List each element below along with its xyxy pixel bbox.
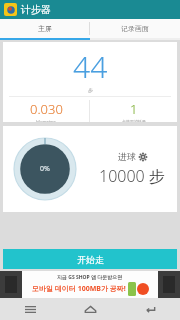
staticText: 计步器 (21, 3, 51, 16)
button[interactable]: 记录画面 (90, 19, 180, 38)
staticText: 步 (88, 87, 93, 93)
button[interactable]: 0.030 (3, 100, 89, 122)
staticText: 지금 GS SHOP 앱 다운받으면 (57, 274, 123, 281)
staticText: 0% (40, 164, 50, 174)
staticText: 记录画面 (121, 24, 149, 33)
button[interactable]: 지금 GS SHOP 앱 다운받으면 (0, 271, 180, 298)
staticText: 卡路里消耗量 (122, 119, 146, 122)
staticText: 1 (130, 100, 138, 118)
button[interactable]: 主屏 (0, 19, 89, 38)
button[interactable]: 开始走 (3, 249, 177, 269)
staticText: 进球 (118, 151, 136, 162)
staticText: 44 (73, 46, 108, 87)
button[interactable]: 1 (90, 100, 177, 122)
button[interactable]: Home (60, 298, 120, 320)
button[interactable]: Back (120, 298, 180, 320)
other: Goal settings (139, 153, 147, 161)
button[interactable]: Menu (0, 298, 60, 320)
staticText: kilometers (36, 119, 56, 122)
staticText: 0.030 (30, 100, 63, 118)
staticText: 主屏 (38, 24, 52, 33)
staticText: 10000 步 (99, 165, 165, 187)
staticText: 开始走 (77, 254, 104, 265)
staticText: 모바일 데이터 100MB가 공짜! (32, 284, 126, 294)
button[interactable]: 进球 (87, 151, 177, 187)
